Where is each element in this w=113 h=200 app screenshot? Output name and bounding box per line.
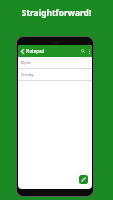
button[interactable]: New note — [79, 175, 88, 184]
button[interactable]: Search — [80, 45, 86, 57]
button[interactable]: One day. — [18, 69, 92, 81]
staticText: Straightforward! — [0, 7, 113, 18]
staticText: My life — [21, 61, 31, 65]
staticText: Notepad — [26, 48, 45, 54]
button[interactable]: More options — [86, 45, 92, 57]
button[interactable]: My life — [18, 57, 92, 69]
button[interactable]: Back — [18, 45, 26, 57]
staticText: One day. — [21, 73, 35, 77]
